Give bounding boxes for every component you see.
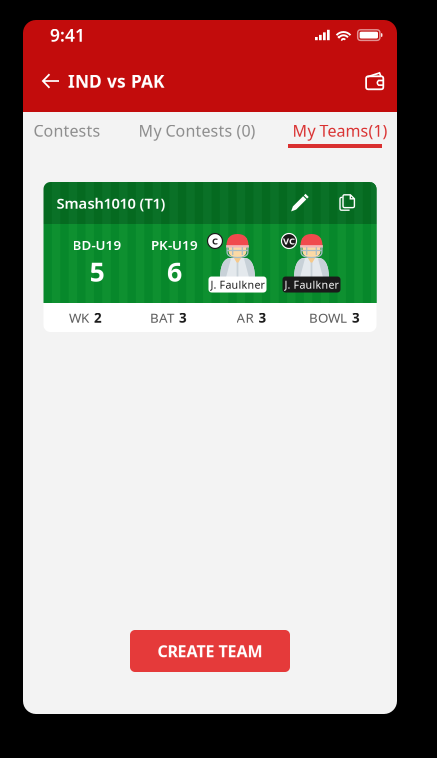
staticText: My Contests (0)	[138, 120, 255, 141]
staticText: 3	[179, 309, 187, 326]
staticText: 9:41	[50, 23, 85, 46]
staticText: AR	[236, 309, 253, 326]
staticText: J. Faulkner	[284, 277, 338, 292]
staticText: J. Faulkner	[210, 277, 264, 292]
button[interactable]: Edit team	[279, 182, 319, 224]
staticText: CREATE TEAM	[157, 640, 262, 662]
button[interactable]: Wallet	[354, 50, 396, 112]
staticText: 3	[352, 309, 360, 326]
staticText: 6	[167, 254, 182, 289]
button[interactable]: CREATE TEAM	[130, 630, 290, 672]
button[interactable]: Duplicate team	[327, 182, 367, 224]
staticText: Contests	[33, 120, 100, 141]
staticText: IND vs PAK	[68, 69, 165, 92]
staticText: WK	[69, 309, 89, 326]
staticText: 3	[258, 309, 266, 326]
button[interactable]: Contests	[23, 112, 111, 150]
staticText: My Teams(1)	[292, 120, 387, 141]
staticText: BD-U19	[72, 236, 121, 254]
staticText: C	[212, 235, 218, 247]
staticText: PK-U19	[151, 236, 198, 254]
button[interactable]: My Contests (0)	[111, 112, 283, 150]
staticText: Smash1010 (T1)	[56, 193, 165, 213]
staticText: 2	[94, 309, 102, 326]
staticText: VC	[283, 235, 295, 247]
button[interactable]: My Teams(1)	[283, 112, 397, 150]
staticText: 5	[89, 254, 104, 289]
button[interactable]: Back	[33, 50, 68, 112]
staticText: BAT	[150, 309, 174, 326]
staticText: BOWL	[309, 309, 347, 326]
